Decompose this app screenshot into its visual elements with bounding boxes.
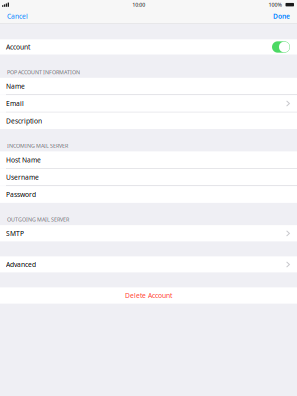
button[interactable]: Name — [0, 78, 297, 95]
button[interactable]: Description — [0, 112, 297, 129]
staticText: Name — [6, 82, 25, 91]
staticText: 10:00 — [132, 1, 145, 8]
button[interactable]: Username — [0, 169, 297, 186]
staticText: Host Name — [6, 155, 41, 164]
button[interactable]: Done — [267, 9, 297, 23]
staticText: Cancel — [7, 12, 28, 21]
staticText: Advanced — [6, 260, 36, 269]
button[interactable]: Cancel — [0, 9, 34, 23]
staticText: Email — [6, 99, 24, 108]
staticText: Done — [273, 12, 290, 21]
staticText: 100% — [268, 1, 282, 8]
button[interactable]: Advanced — [0, 256, 297, 273]
staticText: Username — [6, 173, 39, 182]
button[interactable]: Email — [0, 95, 297, 112]
staticText: Account — [6, 43, 30, 51]
staticText: INCOMING MAIL SERVER — [7, 142, 68, 149]
staticText: Password — [6, 190, 36, 199]
staticText: OUTGOING MAIL SERVER — [7, 216, 69, 223]
button[interactable]: Delete Account — [0, 287, 297, 304]
button[interactable]: Account — [0, 39, 297, 55]
staticText: Description — [6, 116, 42, 125]
button[interactable]: SMTP — [0, 225, 297, 242]
button[interactable]: Password — [0, 186, 297, 203]
staticText: SMTP — [6, 229, 24, 238]
staticText: Delete Account — [125, 291, 172, 300]
button[interactable]: Host Name — [0, 151, 297, 168]
staticText: POP ACCOUNT INFORMATION — [7, 68, 80, 76]
